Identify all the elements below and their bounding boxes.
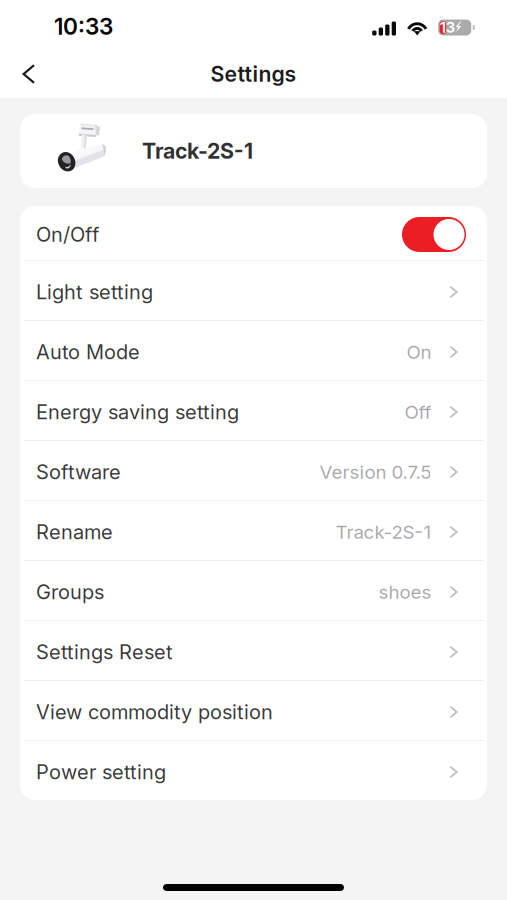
staticText: Off <box>404 401 431 423</box>
button[interactable]: Light setting <box>20 261 487 320</box>
button[interactable]: Back <box>7 52 51 96</box>
button[interactable]: Rename <box>20 501 487 560</box>
staticText: Rename <box>36 520 113 544</box>
staticText: On <box>406 341 431 363</box>
staticText: Version 0.7.5 <box>319 461 431 483</box>
staticText: Groups <box>36 580 104 604</box>
staticText: shoes <box>378 581 431 603</box>
button[interactable]: Power setting <box>20 741 487 800</box>
staticText: On/Off <box>36 222 99 247</box>
staticText: Software <box>36 460 121 484</box>
staticText: Track-2S-1 <box>335 521 431 543</box>
staticText: Auto Mode <box>36 340 140 364</box>
button[interactable]: On/Off <box>402 217 466 252</box>
staticText: Light setting <box>36 280 153 304</box>
staticText: 10:33 <box>54 13 113 40</box>
staticText: View commodity position <box>36 700 273 724</box>
button[interactable]: Software <box>20 441 487 500</box>
button[interactable]: Auto Mode <box>20 321 487 380</box>
staticText: Settings Reset <box>36 640 173 664</box>
staticText: 13 <box>440 19 455 36</box>
button[interactable]: Track-2S-1 <box>20 114 487 188</box>
button[interactable]: Energy saving setting <box>20 381 487 440</box>
staticText: Energy saving setting <box>36 400 239 424</box>
button[interactable]: View commodity position <box>20 681 487 740</box>
button[interactable]: Settings Reset <box>20 621 487 680</box>
button[interactable]: Groups <box>20 561 487 620</box>
staticText: Track-2S-1 <box>142 138 253 164</box>
staticText: Power setting <box>36 760 166 784</box>
staticText: Settings <box>210 61 296 87</box>
